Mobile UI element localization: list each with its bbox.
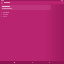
button[interactable]: Profile <box>47 61 52 64</box>
button[interactable] <box>1 14 37 15</box>
button[interactable] <box>1 16 32 17</box>
button[interactable]: Home <box>12 61 17 64</box>
button[interactable]: Explore <box>30 61 35 64</box>
button[interactable] <box>1 12 39 13</box>
button[interactable] <box>1 5 51 10</box>
